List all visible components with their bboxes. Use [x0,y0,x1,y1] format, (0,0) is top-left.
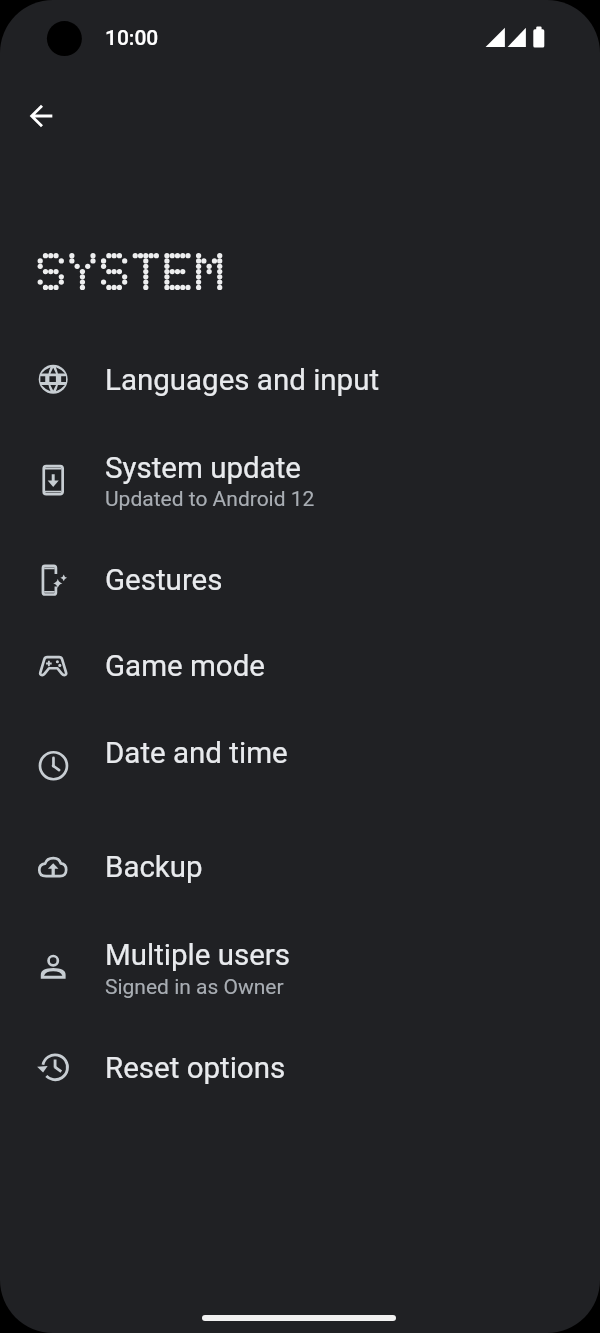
button[interactable]: Languages and input [0,329,600,429]
button[interactable]: Backup [0,817,600,917]
staticText: System update [105,451,301,486]
staticText: Backup [105,850,203,885]
button[interactable]: Reset options [0,1017,600,1117]
button[interactable]: Multiple users [0,917,600,1017]
staticText: Signed in as Owner [105,975,284,1000]
button[interactable]: System update [0,430,600,530]
staticText: Game mode [105,649,265,684]
button[interactable]: Game mode [0,616,600,716]
staticText: Reset options [105,1051,286,1086]
staticText: Multiple users [105,938,291,973]
button[interactable]: Gestures [0,530,600,630]
staticText: Languages and input [105,363,380,398]
staticText: Date and time [105,736,288,771]
button[interactable]: Back [13,88,69,144]
staticText: Gestures [105,563,223,598]
staticText: Updated to Android 12 [105,487,315,512]
staticText: 10:00 [105,26,159,51]
button[interactable]: Date and time [0,715,600,815]
